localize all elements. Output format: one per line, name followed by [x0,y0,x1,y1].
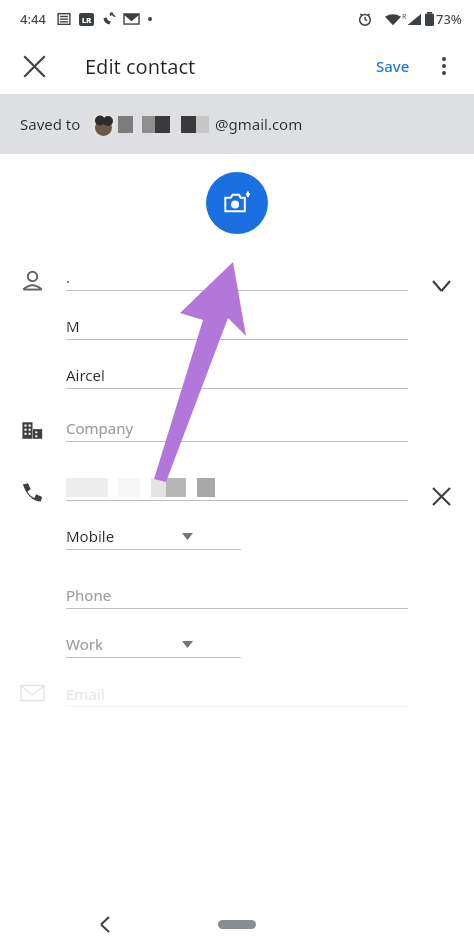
staticText: Company [66,418,134,438]
button[interactable]: Back [85,904,125,944]
staticText: Edit contact [85,53,196,80]
button[interactable]: Home [218,920,256,929]
staticText: M [66,316,80,336]
button[interactable]: Aircel [66,362,408,389]
staticText: Email [66,684,105,704]
staticText: R [402,12,407,22]
staticText: Save [376,56,410,76]
staticText: Saved to [20,114,81,134]
staticText: 4:44 [20,10,46,28]
button[interactable]: Company [66,415,408,442]
button[interactable]: Remove phone number [419,474,463,518]
button[interactable]: Saved to [0,94,474,154]
button[interactable]: Close [10,42,58,90]
button[interactable]: Add photo [206,172,268,234]
button[interactable]: More options [422,44,466,88]
button[interactable]: Expand name fields [419,264,463,308]
staticText: Work [66,634,103,654]
button[interactable]: Work [66,631,241,658]
staticText: Mobile [66,526,115,546]
staticText: . [66,267,71,287]
button[interactable]: M [66,313,408,340]
staticText: @gmail.com [215,114,303,134]
staticText: LR [82,15,92,25]
staticText: Aircel [66,365,105,385]
button[interactable]: Mobile [66,523,241,550]
staticText: 73% [436,10,462,28]
button[interactable]: Phone [66,582,408,609]
button[interactable]: Save [368,48,418,84]
staticText: Phone [66,585,112,605]
button[interactable] [66,474,215,500]
button[interactable]: . [66,264,408,291]
